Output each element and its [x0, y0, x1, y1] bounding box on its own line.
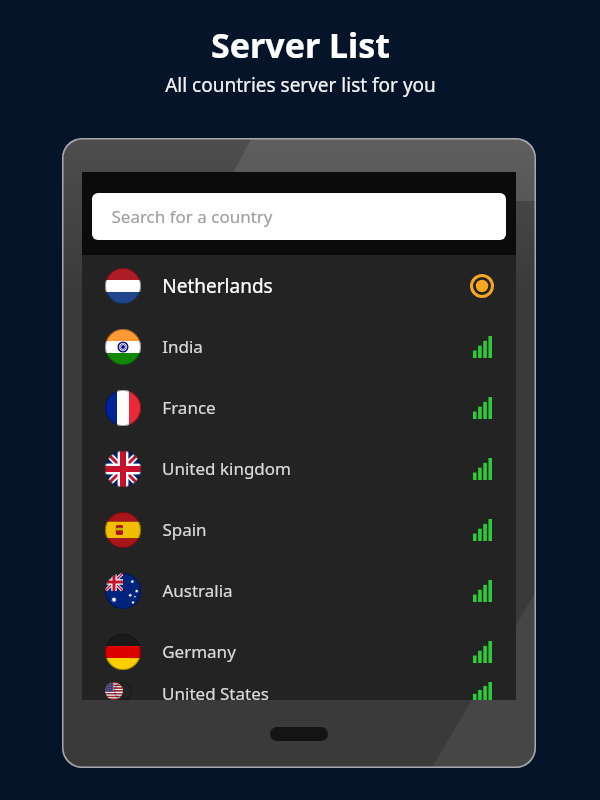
staticText: Spain: [162, 518, 207, 541]
button[interactable]: United kingdom: [82, 438, 516, 499]
other: Signal strength: [472, 458, 494, 480]
button[interactable]: Australia: [82, 560, 516, 621]
button[interactable]: United States: [82, 682, 516, 700]
other: Signal strength: [472, 336, 494, 358]
staticText: Search for a country: [111, 205, 273, 228]
staticText: Australia: [162, 579, 233, 602]
other: Signal strength: [472, 519, 494, 541]
staticText: India: [162, 335, 203, 358]
staticText: United States: [162, 682, 269, 700]
button[interactable]: Netherlands: [82, 255, 516, 316]
other: Selected server: [470, 274, 494, 298]
staticText: Netherlands: [162, 273, 273, 299]
other: Signal strength: [472, 397, 494, 419]
staticText: Server List: [211, 22, 390, 68]
button[interactable]: Germany: [82, 621, 516, 682]
other: Signal strength: [472, 682, 494, 700]
other: Signal strength: [472, 641, 494, 663]
button[interactable]: Search for a country: [92, 193, 506, 240]
button[interactable]: India: [82, 316, 516, 377]
staticText: France: [162, 396, 216, 419]
button[interactable]: Home: [270, 727, 328, 741]
button[interactable]: France: [82, 377, 516, 438]
button[interactable]: Spain: [82, 499, 516, 560]
staticText: Germany: [162, 640, 236, 663]
staticText: All countries server list for you: [165, 72, 436, 98]
other: Signal strength: [472, 580, 494, 602]
staticText: United kingdom: [162, 457, 291, 480]
